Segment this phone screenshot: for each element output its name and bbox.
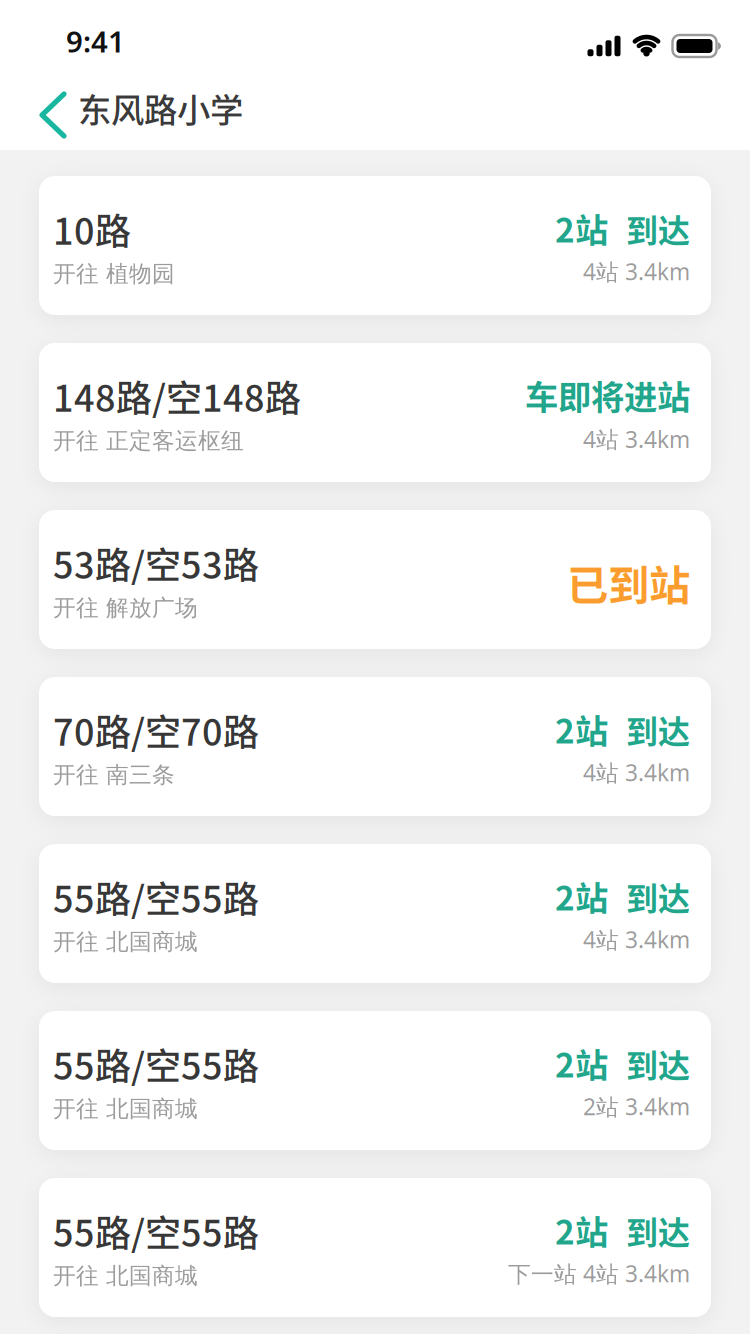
staticText: 4站 3.4km [583, 256, 690, 287]
staticText: 148路/空148路 [53, 370, 301, 422]
staticText: 2站 到达 [555, 204, 690, 251]
staticText: 55路/空55路 [53, 871, 259, 923]
staticText: 开往 北国商城 [53, 1262, 198, 1290]
staticText: 4站 3.4km [583, 924, 690, 955]
staticText: 开往 南三条 [53, 761, 175, 789]
staticText: 55路/空55路 [53, 1205, 259, 1257]
staticText: 55路/空55路 [53, 1038, 259, 1090]
staticText: 2站 到达 [555, 1039, 690, 1086]
staticText: 53路/空53路 [53, 537, 259, 589]
button[interactable]: 148路/空148路 [39, 343, 711, 482]
staticText: 2站 3.4km [583, 1091, 690, 1122]
staticText: 2站 到达 [555, 705, 690, 752]
button[interactable]: Back [0, 94, 78, 136]
staticText: 70路/空70路 [53, 704, 259, 756]
button[interactable]: 55路/空55路 [39, 844, 711, 983]
staticText: 4站 3.4km [583, 424, 690, 454]
staticText: 开往 正定客运枢纽 [53, 427, 244, 455]
staticText: 9:41 [66, 21, 125, 60]
staticText: 车即将进站 [525, 371, 690, 419]
button[interactable]: 55路/空55路 [39, 1178, 711, 1317]
button[interactable]: 55路/空55路 [39, 1011, 711, 1150]
staticText: 开往 解放广场 [53, 594, 198, 622]
staticText: 开往 北国商城 [53, 1095, 198, 1123]
button[interactable]: 10路 [39, 176, 711, 315]
button[interactable]: 70路/空70路 [39, 677, 711, 816]
staticText: 2站 到达 [555, 872, 690, 919]
staticText: 开往 北国商城 [53, 928, 198, 956]
staticText: 10路 [53, 203, 131, 255]
staticText: 开往 植物园 [53, 260, 175, 288]
staticText: 2站 到达 [555, 1206, 690, 1253]
button[interactable]: 53路/空53路 [39, 510, 711, 649]
staticText: 已到站 [567, 553, 690, 612]
staticText: 下一站 4站 3.4km [508, 1258, 690, 1289]
staticText: 4站 3.4km [583, 757, 690, 788]
staticText: 东风路小学 [78, 84, 243, 132]
